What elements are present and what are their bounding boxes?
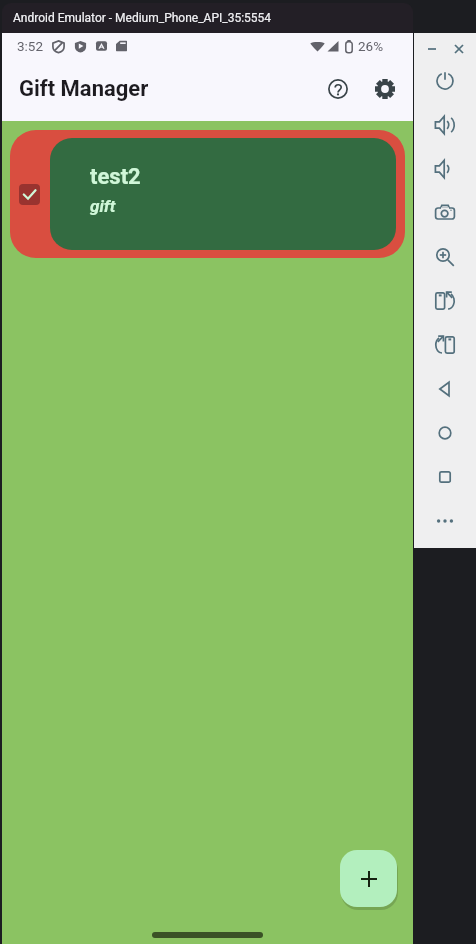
- button[interactable]: Back: [414, 367, 476, 411]
- button[interactable]: Overview: [414, 455, 476, 499]
- button[interactable]: Settings: [366, 70, 404, 108]
- staticText: test2: [90, 164, 141, 190]
- button[interactable]: Power: [414, 59, 476, 103]
- button[interactable]: Rotate left: [414, 279, 476, 323]
- button[interactable]: Take screenshot: [414, 191, 476, 235]
- button[interactable]: Rotate right: [414, 323, 476, 367]
- staticText: Android Emulator - Medium_Phone_API_35:5…: [13, 11, 272, 25]
- button[interactable]: Volume down: [414, 147, 476, 191]
- button[interactable]: Home: [414, 411, 476, 455]
- button[interactable]: More: [414, 499, 476, 543]
- button[interactable]: Close: [449, 39, 469, 59]
- button[interactable]: Zoom: [414, 235, 476, 279]
- button[interactable]: Add gift: [340, 850, 397, 907]
- staticText: gift: [90, 196, 116, 216]
- button[interactable]: Volume up: [414, 103, 476, 147]
- staticText: Gift Manager: [19, 76, 149, 102]
- button[interactable]: Gift selected: [19, 184, 40, 205]
- button[interactable]: Help: [319, 70, 357, 108]
- staticText: 3:52: [17, 38, 44, 54]
- staticText: 26%: [358, 38, 384, 54]
- button[interactable]: Minimize: [422, 39, 442, 59]
- button[interactable]: Gift selected: [10, 130, 405, 258]
